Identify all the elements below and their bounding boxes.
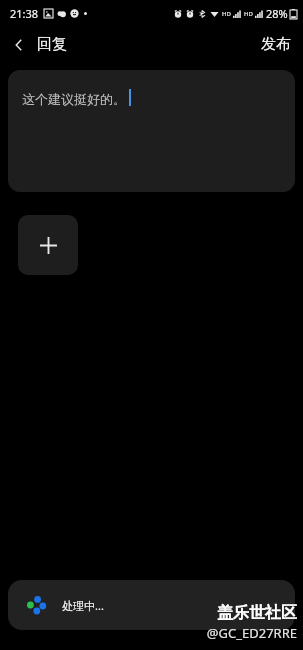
button[interactable]: Back	[0, 29, 77, 60]
button[interactable]: 发布	[249, 29, 303, 60]
button[interactable]: 处理中...	[8, 580, 295, 630]
button[interactable]: 这个建议挺好的。	[8, 70, 295, 192]
staticText: 回复	[37, 35, 67, 54]
staticText: 处理中...	[62, 598, 104, 613]
staticText: 发布	[261, 35, 291, 54]
button[interactable]: Add image	[18, 215, 78, 275]
staticText: 这个建议挺好的。	[22, 91, 126, 107]
staticText: HD	[244, 10, 253, 18]
staticText: 21:38	[10, 6, 39, 21]
staticText: @GC_ED27RRE	[206, 624, 297, 642]
other: Back	[10, 36, 28, 54]
staticText: 28%	[266, 6, 288, 21]
staticText: 盖乐世社区	[217, 603, 297, 623]
staticText: HD	[222, 10, 231, 18]
